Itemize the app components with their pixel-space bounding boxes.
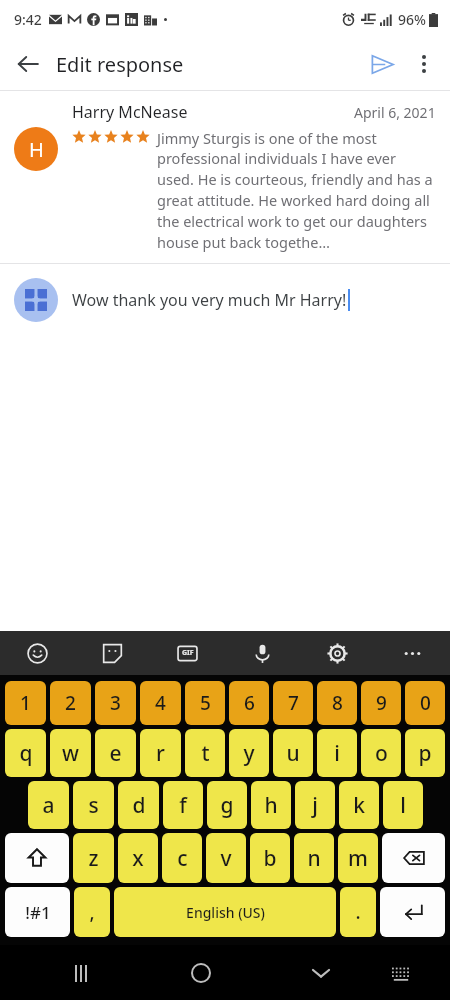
button[interactable]: s <box>73 781 114 829</box>
button[interactable]: b <box>250 833 290 883</box>
button[interactable]: Enter <box>380 887 445 937</box>
button[interactable]: . <box>340 887 376 937</box>
staticText: f <box>179 791 187 820</box>
staticText: Jimmy Sturgis is one of the most profess… <box>157 128 436 253</box>
button[interactable]: GIF <box>150 631 225 675</box>
button[interactable]: Back <box>6 42 50 86</box>
button[interactable]: t <box>185 729 225 777</box>
button[interactable]: H <box>14 101 436 253</box>
button[interactable]: 3 <box>95 681 136 725</box>
button[interactable]: u <box>273 729 313 777</box>
staticText: q <box>19 739 33 768</box>
button[interactable]: e <box>95 729 136 777</box>
button[interactable]: !#1 <box>5 887 70 937</box>
staticText: k <box>353 791 365 820</box>
button[interactable]: Send <box>360 42 404 86</box>
staticText: 5 <box>200 690 211 716</box>
staticText: j <box>312 791 318 820</box>
staticText: y <box>243 739 255 768</box>
button[interactable]: Wow thank you very much Mr Harry! <box>14 278 436 322</box>
button[interactable]: 7 <box>273 681 313 725</box>
button[interactable]: Backspace <box>382 833 445 883</box>
button[interactable]: c <box>162 833 202 883</box>
button[interactable]: Emoji <box>0 631 75 675</box>
button[interactable]: z <box>73 833 114 883</box>
staticText: g <box>220 791 234 820</box>
button[interactable]: Shift <box>5 833 69 883</box>
staticText: . <box>355 899 361 925</box>
button[interactable]: l <box>383 781 423 829</box>
button[interactable]: 8 <box>317 681 357 725</box>
button[interactable]: g <box>207 781 247 829</box>
staticText: English (US) <box>186 903 265 922</box>
staticText: u <box>286 739 300 768</box>
button[interactable]: , <box>74 887 110 937</box>
button[interactable]: f <box>163 781 203 829</box>
button[interactable]: 1 <box>5 681 46 725</box>
staticText: i <box>334 739 340 768</box>
staticText: r <box>156 739 165 768</box>
button[interactable]: Change keyboard <box>377 949 425 997</box>
button[interactable]: More <box>375 631 450 675</box>
staticText: April 6, 2021 <box>354 103 436 122</box>
staticText: a <box>42 791 55 820</box>
staticText: l <box>400 791 406 820</box>
button[interactable]: 6 <box>229 681 269 725</box>
staticText: x <box>132 844 144 873</box>
staticText: c <box>177 844 188 873</box>
button[interactable]: d <box>118 781 159 829</box>
staticText: w <box>62 739 79 768</box>
staticText: Harry McNease <box>72 101 188 123</box>
button[interactable]: j <box>295 781 335 829</box>
button[interactable]: o <box>361 729 401 777</box>
staticText: 9 <box>376 690 387 716</box>
staticText: 96% <box>398 10 426 29</box>
button[interactable]: m <box>338 833 378 883</box>
button[interactable]: 2 <box>50 681 91 725</box>
button[interactable]: 0 <box>405 681 445 725</box>
button[interactable]: a <box>28 781 69 829</box>
button[interactable]: r <box>140 729 181 777</box>
staticText: p <box>418 739 432 768</box>
staticText: m <box>348 844 368 873</box>
button[interactable]: x <box>118 833 158 883</box>
button[interactable]: Home <box>177 949 225 997</box>
staticText: o <box>375 739 388 768</box>
staticText: 6 <box>244 690 255 716</box>
staticText: H <box>29 136 44 163</box>
button[interactable]: Hide keyboard <box>297 949 345 997</box>
button[interactable]: Recent apps <box>57 949 105 997</box>
button[interactable]: p <box>405 729 445 777</box>
staticText: e <box>109 739 122 768</box>
staticText: 0 <box>420 690 431 716</box>
staticText: 7 <box>288 690 299 716</box>
staticText: s <box>88 791 99 820</box>
staticText: 2 <box>65 690 76 716</box>
button[interactable]: q <box>5 729 46 777</box>
button[interactable]: More options <box>404 44 444 84</box>
staticText: 3 <box>110 690 121 716</box>
button[interactable]: i <box>317 729 357 777</box>
button[interactable]: h <box>251 781 291 829</box>
staticText: v <box>220 844 232 873</box>
staticText: n <box>307 844 321 873</box>
staticText: , <box>89 899 95 925</box>
button[interactable]: n <box>294 833 334 883</box>
button[interactable]: English (US) <box>114 887 336 937</box>
button[interactable]: w <box>50 729 91 777</box>
button[interactable]: Settings <box>300 631 375 675</box>
button[interactable]: y <box>229 729 269 777</box>
button[interactable]: Stickers <box>75 631 150 675</box>
staticText: h <box>264 791 278 820</box>
button[interactable]: 4 <box>140 681 181 725</box>
staticText: z <box>88 844 99 873</box>
button[interactable]: 9 <box>361 681 401 725</box>
button[interactable]: k <box>339 781 379 829</box>
staticText: GIF <box>182 648 194 658</box>
button[interactable]: v <box>206 833 246 883</box>
staticText: Wow thank you very much Mr Harry! <box>72 289 347 311</box>
button[interactable]: 5 <box>185 681 225 725</box>
staticText: 4 <box>155 690 166 716</box>
button[interactable]: Voice input <box>225 631 300 675</box>
staticText: 8 <box>332 690 343 716</box>
